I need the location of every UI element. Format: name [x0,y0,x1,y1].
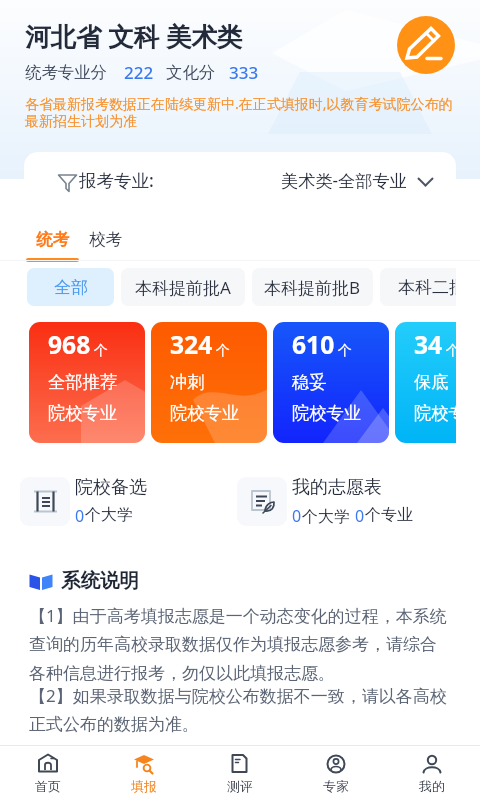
staticText: 测评 [227,778,253,794]
staticText: 本科提前批A [135,276,231,299]
button[interactable]: 测评 [192,746,288,800]
button[interactable]: 本科提前批B [252,268,373,306]
staticText: 全部推荐 [48,371,118,393]
staticText: 333 [229,61,259,84]
staticText: 个大学 [302,505,355,527]
staticText: 0 [292,505,302,527]
button[interactable]: 34 [395,322,456,443]
staticText: 我的志愿表 [292,476,382,499]
staticText: 本科二批 [398,277,456,298]
staticText: 0 [355,505,365,527]
button[interactable]: 报考专业: [24,152,456,214]
button[interactable]: 填报 [96,746,192,800]
button[interactable]: 专家 [288,746,384,800]
button[interactable]: 本科二批 [380,268,456,306]
staticText: 专家 [323,778,349,794]
staticText: 院校专业 [48,402,118,424]
staticText: 河北省 文科 美术类 [25,19,243,54]
button[interactable]: 编辑 [397,16,455,74]
staticText: 【2】如果录取数据与院校公布数据不一致，请以各高校正式公布的数据为准。 [29,684,451,735]
staticText: 文化分 [166,62,216,83]
button[interactable]: 首页 [0,746,96,800]
staticText: 个 [94,342,108,360]
staticText: 美术类-全部专业 [281,169,407,192]
button[interactable]: 我的志愿表 [237,476,413,527]
staticText: 个 [338,342,352,360]
staticText: 【1】由于高考填报志愿是一个动态变化的过程，本系统查询的历年高校录取数据仅作为填… [29,604,451,684]
staticText: 个 [216,342,230,360]
button[interactable]: 全部 [27,268,114,306]
staticText: 首页 [35,778,61,794]
staticText: 冲刺 [170,371,205,393]
staticText: 个专业 [365,505,413,525]
staticText: 院校专业 [414,402,456,424]
staticText: 个 [446,342,456,360]
staticText: 968 [48,328,91,362]
button[interactable]: 本科提前批A [121,268,245,306]
staticText: 222 [124,61,154,84]
staticText: 34 [414,328,443,362]
staticText: 保底 [414,371,449,393]
staticText: 报考专业: [79,168,154,192]
staticText: 校考 [89,229,123,250]
staticText: 院校备选 [75,476,147,499]
staticText: 324 [170,328,213,362]
staticText: 610 [292,328,335,362]
staticText: 本科提前批B [264,276,361,299]
staticText: 院校专业 [292,402,362,424]
staticText: 稳妥 [292,371,327,393]
button[interactable]: 610 [273,322,389,443]
staticText: 我的 [419,778,445,794]
staticText: 院校专业 [170,402,240,424]
staticText: 各省最新报考数据正在陆续更新中.在正式填报时,以教育考试院公布的最新招生计划为准 [25,94,459,130]
staticText: 系统说明 [61,568,139,593]
staticText: 全部 [54,277,88,298]
staticText: 个大学 [85,505,133,525]
button[interactable]: 324 [151,322,267,443]
button[interactable]: 院校备选 [20,476,147,527]
staticText: 统考专业分 [25,62,107,83]
button[interactable]: 968 [29,322,145,443]
staticText: 填报 [131,778,157,794]
button[interactable]: 我的 [384,746,480,800]
staticText: 统考 [36,229,70,250]
staticText: 0 [75,505,85,527]
